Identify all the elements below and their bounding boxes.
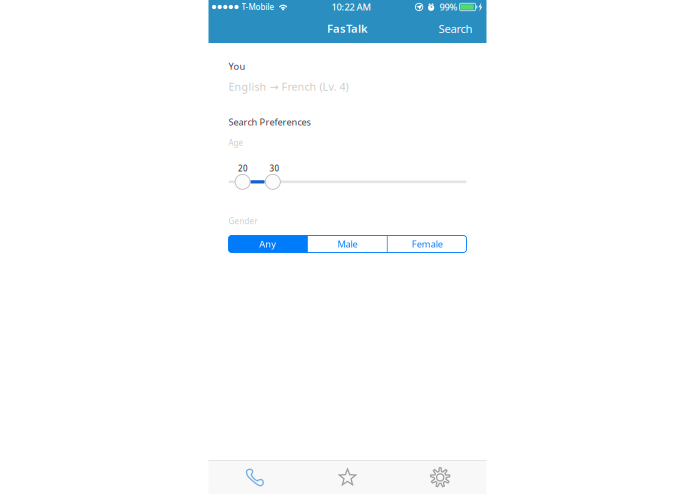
staticText: Search Preferences [228, 116, 310, 128]
button[interactable]: Settings [394, 461, 486, 494]
button[interactable]: Any [228, 235, 307, 252]
staticText: Female [412, 238, 443, 250]
staticText: Age [228, 137, 243, 148]
button[interactable]: Calls [208, 461, 301, 494]
button[interactable]: Favorites [301, 461, 394, 494]
staticText: Gender [228, 216, 257, 226]
staticText: 99% [440, 1, 458, 13]
staticText: 30 [269, 163, 279, 174]
button[interactable]: Female [388, 235, 466, 252]
staticText: Any [259, 238, 276, 250]
staticText: FasTalk [327, 21, 368, 36]
staticText: 10:22 AM [332, 1, 372, 13]
staticText: Search [438, 21, 472, 36]
staticText: 20 [238, 163, 248, 174]
staticText: Male [337, 238, 357, 250]
staticText: You [228, 60, 245, 72]
button[interactable]: Search [432, 15, 478, 42]
staticText: T-Mobile [242, 2, 275, 12]
button[interactable]: Male [308, 235, 387, 252]
staticText: English → French (Lv. 4) [228, 79, 348, 94]
